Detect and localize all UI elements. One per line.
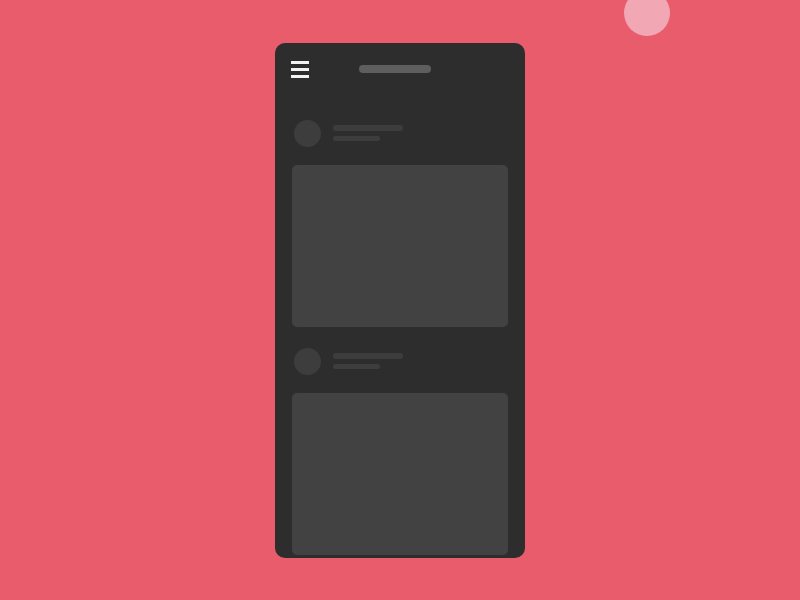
button[interactable]: [275, 112, 525, 154]
button[interactable]: [275, 340, 525, 382]
button[interactable]: Open navigation menu: [283, 52, 317, 86]
